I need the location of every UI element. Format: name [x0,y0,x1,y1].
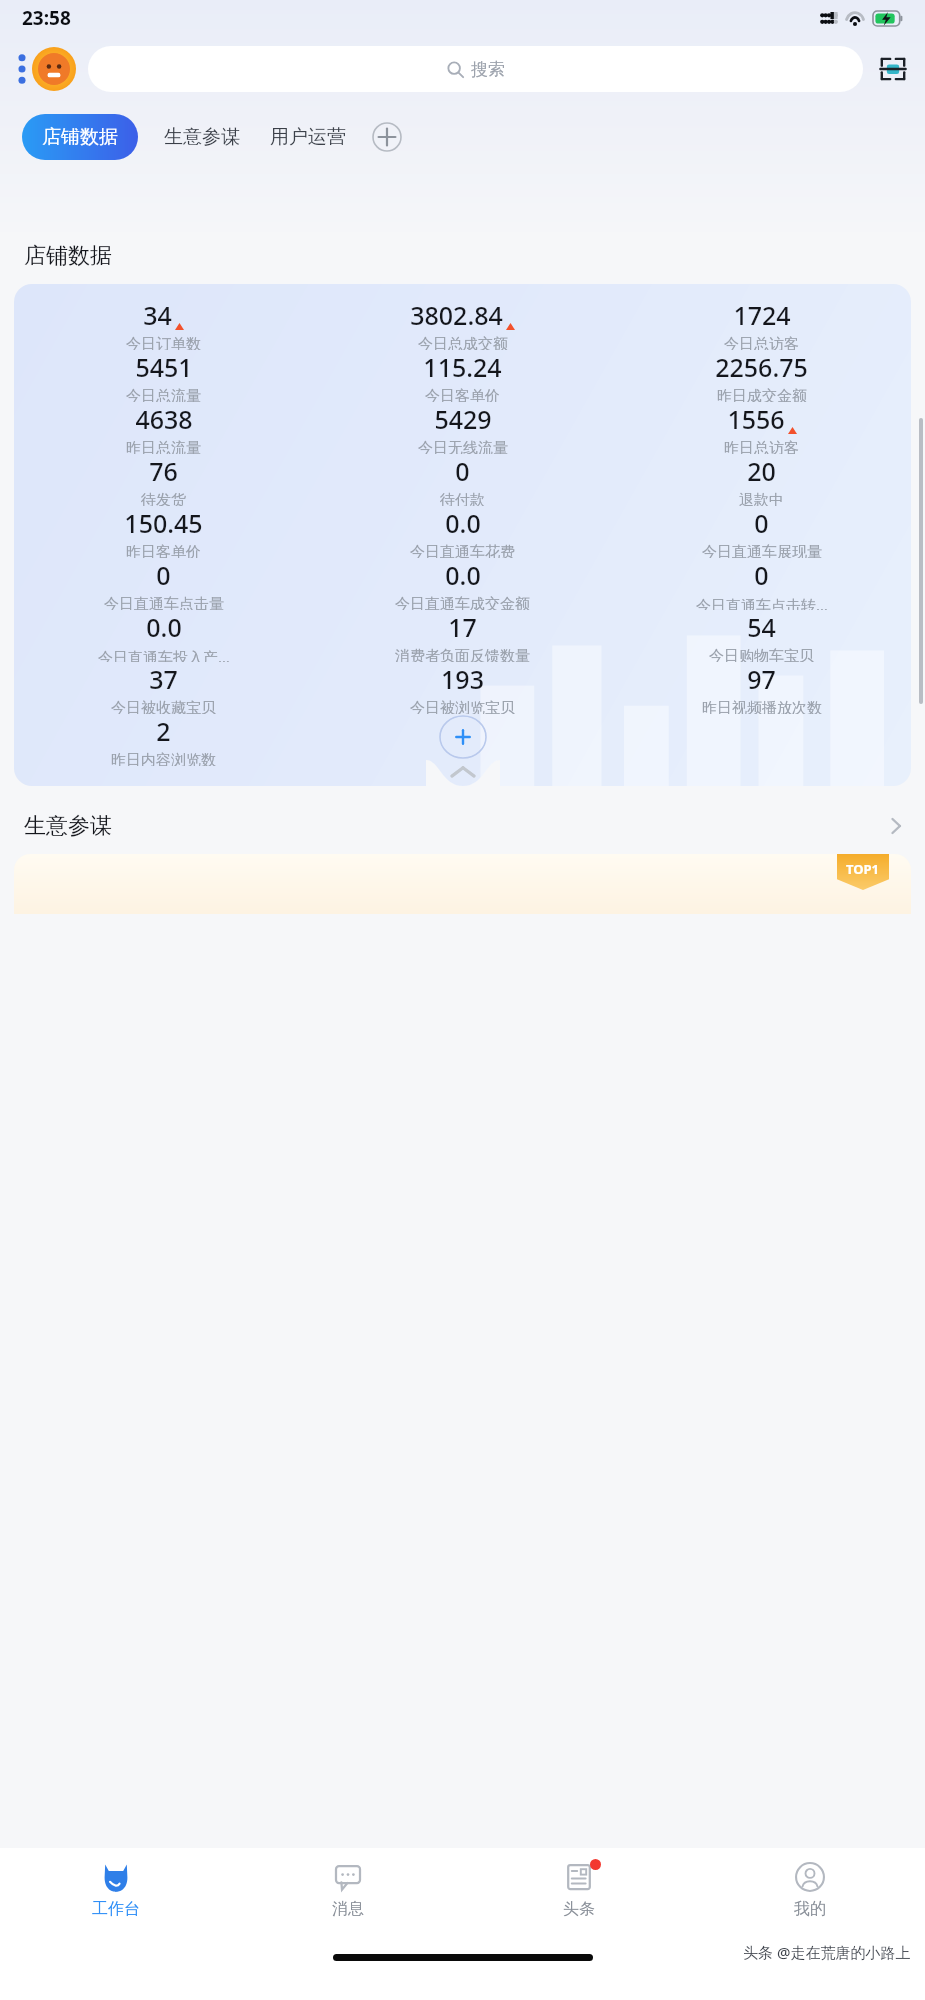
button[interactable]: 54 [612,610,911,662]
staticText: 34 [143,298,172,332]
staticText: 115.24 [423,350,502,384]
staticText: 54 [747,610,776,644]
staticText: 今日直通车点击转… [696,595,828,610]
staticText: 我的 [794,1899,826,1919]
staticText: 今日直通车投入产… [98,647,230,662]
staticText: 1724 [733,298,791,332]
button[interactable]: 生意参谋 [0,808,925,844]
button[interactable]: TOP1 [14,854,911,914]
staticText: 昨日内容浏览数 [111,751,216,766]
button[interactable]: 0.0 [313,558,612,610]
staticText: 0.0 [445,506,481,540]
staticText: 头条 @走在荒唐的小路上 [743,1942,911,1962]
staticText: 生意参谋 [24,812,112,840]
button[interactable]: Collapse [426,760,500,786]
staticText: 37 [149,662,178,696]
staticText: TOP1 [846,860,880,878]
staticText: 搜索 [471,59,505,80]
button[interactable]: 5451 [14,350,313,402]
staticText: 头条 [563,1899,595,1919]
button[interactable]: 店铺数据 [22,114,138,160]
staticText: 待发货 [141,491,186,506]
button[interactable]: 我的 [694,1848,925,1940]
staticText: 今日总流量 [126,387,201,402]
button[interactable]: 17 [313,610,612,662]
staticText: 今日总访客 [724,335,799,350]
button[interactable]: 0.0 [14,610,313,662]
button[interactable]: 3802.84 [313,298,612,350]
staticText: 今日订单数 [126,335,201,350]
staticText: 193 [441,662,484,696]
staticText: 5451 [135,350,193,384]
button[interactable]: 20 [612,454,911,506]
button[interactable]: More [14,49,30,89]
staticText: 今日被收藏宝贝 [111,699,216,714]
staticText: 150.45 [124,506,203,540]
staticText: 昨日视频播放次数 [702,699,822,714]
staticText: 消费者负面反馈数量 [395,647,530,662]
button[interactable]: 2256.75 [612,350,911,402]
button[interactable]: 115.24 [313,350,612,402]
button[interactable]: 76 [14,454,313,506]
button[interactable]: Profile [32,47,76,91]
staticText: 17 [448,610,477,644]
button[interactable]: 用户运营 [264,117,352,157]
button[interactable]: 0.0 [313,506,612,558]
staticText: 今日购物车宝贝 [709,647,814,662]
staticText: 用户运营 [270,125,346,149]
button[interactable]: 97 [612,662,911,714]
button[interactable]: 消息 [232,1848,463,1940]
staticText: 今日被浏览宝贝 [410,699,515,714]
staticText: 76 [149,454,178,488]
button[interactable]: 工作台 [0,1848,232,1940]
button[interactable]: 150.45 [14,506,313,558]
staticText: 昨日成交金额 [717,387,807,402]
button[interactable]: 34 [14,298,313,350]
staticText: 消息 [332,1899,364,1919]
staticText: 今日总成交额 [418,335,508,350]
staticText: 0 [754,558,769,592]
staticText: 5429 [434,402,492,436]
staticText: 2 [156,714,171,748]
staticText: 20 [747,454,776,488]
staticText: 0 [156,558,171,592]
staticText: 0.0 [445,558,481,592]
staticText: 0.0 [146,610,182,644]
staticText: 昨日客单价 [126,543,201,558]
staticText: 97 [747,662,776,696]
staticText: 今日无线流量 [418,439,508,454]
button[interactable]: 0 [14,558,313,610]
button[interactable]: 4638 [14,402,313,454]
staticText: 今日直通车点击量 [104,595,224,610]
button[interactable]: Scan [875,51,911,87]
staticText: 生意参谋 [164,125,240,149]
staticText: 23:58 [22,5,71,31]
staticText: 昨日总流量 [126,439,201,454]
staticText: 店铺数据 [42,125,118,149]
button[interactable]: 1724 [612,298,911,350]
staticText: 今日客单价 [425,387,500,402]
button[interactable]: Add metric [440,716,486,758]
button[interactable]: 搜索 [88,46,863,92]
staticText: 待付款 [440,491,485,506]
button[interactable]: 5429 [313,402,612,454]
button[interactable]: 0 [313,454,612,506]
staticText: 今日直通车展现量 [702,543,822,558]
button[interactable]: 0 [612,558,911,610]
button[interactable]: 1556 [612,402,911,454]
staticText: 0 [754,506,769,540]
staticText: 1556 [727,402,785,436]
staticText: 今日直通车花费 [410,543,515,558]
button[interactable]: 193 [313,662,612,714]
staticText: 店铺数据 [24,242,112,270]
staticText: 2256.75 [715,350,808,384]
button[interactable]: 37 [14,662,313,714]
staticText: 今日直通车成交金额 [395,595,530,610]
button[interactable]: 头条 [463,1848,694,1940]
staticText: 0 [455,454,470,488]
button[interactable]: 0 [612,506,911,558]
staticText: 退款中 [739,491,784,506]
button[interactable]: 生意参谋 [158,117,246,157]
staticText: 4638 [135,402,193,436]
button[interactable]: Add tab [372,122,402,152]
